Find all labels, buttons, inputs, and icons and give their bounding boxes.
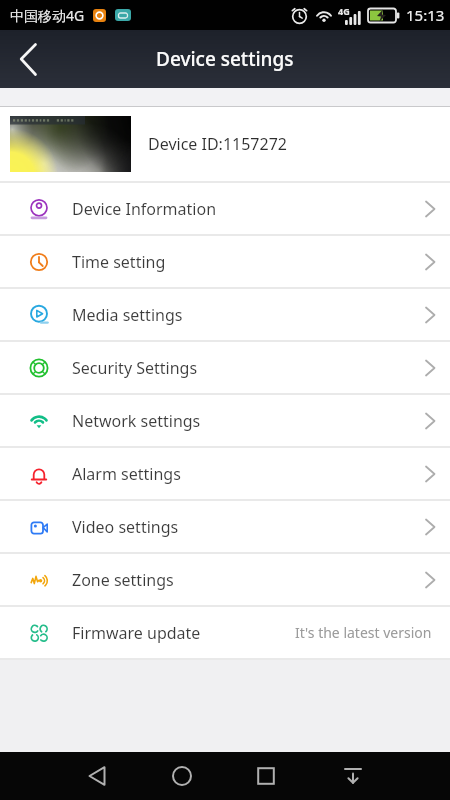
button[interactable]: Network settings bbox=[0, 395, 450, 446]
staticText: Zone settings bbox=[72, 569, 174, 591]
staticText: 15:13 bbox=[406, 5, 445, 25]
staticText: 中国移动4G bbox=[10, 6, 85, 25]
button[interactable]: Security Settings bbox=[0, 342, 450, 393]
button[interactable]: Video settings bbox=[0, 501, 450, 552]
staticText: Video settings bbox=[72, 516, 179, 538]
button[interactable]: Alarm settings bbox=[0, 448, 450, 499]
staticText: Device settings bbox=[156, 46, 294, 72]
button[interactable] bbox=[329, 752, 377, 800]
button[interactable] bbox=[74, 752, 122, 800]
button[interactable]: Media settings bbox=[0, 289, 450, 340]
button[interactable] bbox=[0, 30, 56, 88]
staticText: Time setting bbox=[72, 251, 166, 273]
staticText: 4G bbox=[338, 5, 350, 17]
button[interactable]: Firmware update bbox=[0, 607, 450, 658]
button[interactable]: Zone settings bbox=[0, 554, 450, 605]
staticText: Network settings bbox=[72, 410, 201, 432]
staticText: Alarm settings bbox=[72, 463, 181, 485]
button[interactable]: Device ID:1157272 bbox=[0, 107, 450, 181]
button[interactable]: Device Information bbox=[0, 183, 450, 234]
staticText: Media settings bbox=[72, 304, 183, 326]
button[interactable]: Time setting bbox=[0, 236, 450, 287]
staticText: Device Information bbox=[72, 198, 217, 220]
button[interactable] bbox=[158, 752, 206, 800]
staticText: Security Settings bbox=[72, 357, 198, 379]
staticText: Device ID:1157272 bbox=[148, 133, 287, 155]
staticText: It's the latest version bbox=[295, 623, 432, 642]
staticText: Firmware update bbox=[72, 622, 201, 644]
button[interactable] bbox=[242, 752, 290, 800]
